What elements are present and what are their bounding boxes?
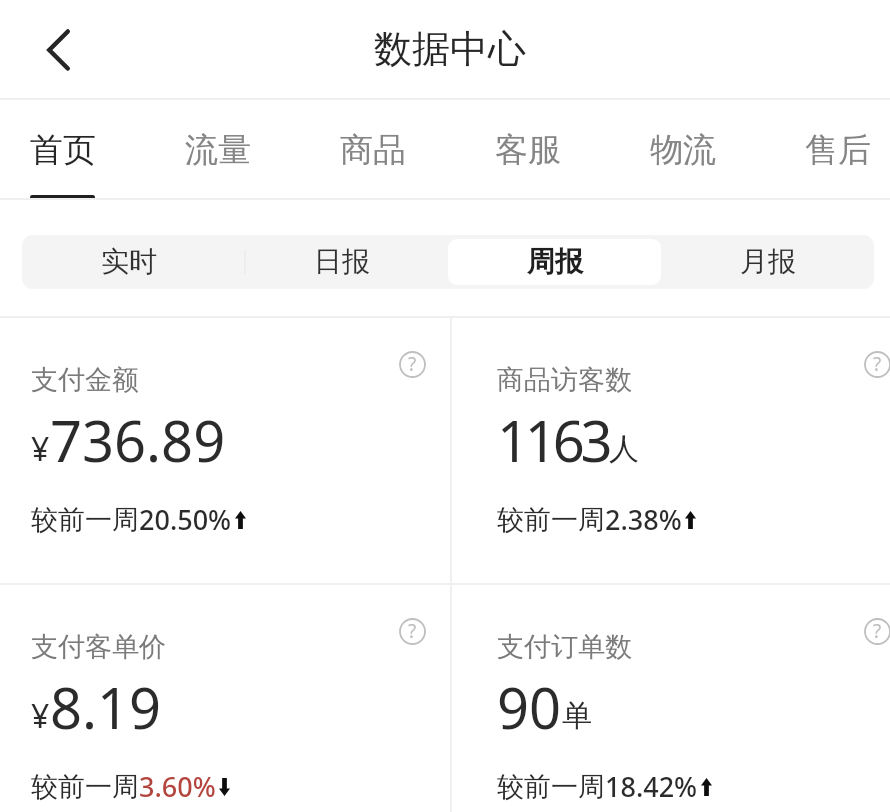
staticText: 支付金额 [31, 363, 139, 397]
staticText: 售后 [805, 129, 871, 171]
button[interactable]: 客服 [494, 100, 561, 200]
staticText: 支付客单价 [31, 630, 166, 664]
button[interactable]: Back [12, 15, 82, 85]
staticText: ¥ [31, 427, 50, 471]
staticText: 单 [562, 697, 592, 735]
staticText: ? [408, 351, 417, 377]
staticText: 商品 [340, 129, 406, 171]
button[interactable]: 支付订单数 [451, 585, 890, 812]
staticText: 月报 [740, 244, 796, 279]
staticText: 数据中心 [374, 25, 526, 73]
staticText: 20.50% [139, 501, 232, 538]
staticText: 周报 [527, 244, 583, 279]
staticText: ? [873, 351, 882, 377]
button[interactable]: 首页 [29, 100, 96, 200]
button[interactable]: Help [399, 351, 426, 378]
staticText: 支付订单数 [497, 630, 632, 664]
staticText: 物流 [650, 129, 716, 171]
staticText: 18.42% [605, 768, 698, 805]
staticText: 2.38% [605, 501, 682, 538]
staticText: 1163 [497, 402, 609, 478]
button[interactable]: 支付客单价 [0, 585, 450, 812]
staticText: 较前一周 [497, 503, 605, 537]
staticText: ? [873, 618, 882, 644]
staticText: 90 [497, 669, 562, 745]
button[interactable]: 周报 [448, 239, 661, 285]
button[interactable]: 月报 [661, 239, 874, 285]
staticText: 人 [609, 430, 639, 468]
staticText: 较前一周 [497, 770, 605, 804]
button[interactable]: 商品访客数 [451, 318, 890, 583]
button[interactable]: Help [399, 618, 426, 645]
button[interactable]: Help [864, 618, 890, 645]
staticText: 首页 [30, 129, 96, 171]
staticText: 实时 [101, 244, 157, 279]
button[interactable]: 流量 [184, 100, 251, 200]
button[interactable]: 支付金额 [0, 318, 450, 583]
staticText: 8.19 [50, 669, 162, 745]
button[interactable]: 商品 [339, 100, 406, 200]
staticText: 736.89 [50, 402, 226, 478]
button[interactable]: 实时 [22, 239, 235, 285]
button[interactable]: 售后 [804, 100, 871, 200]
staticText: ¥ [31, 694, 50, 738]
button[interactable]: Help [864, 351, 890, 378]
staticText: 较前一周 [31, 770, 139, 804]
button[interactable]: 日报 [235, 239, 448, 285]
staticText: 客服 [495, 129, 561, 171]
button[interactable]: 物流 [649, 100, 716, 200]
staticText: ? [408, 618, 417, 644]
staticText: 流量 [185, 129, 251, 171]
staticText: 3.60% [139, 768, 216, 805]
staticText: 较前一周 [31, 503, 139, 537]
staticText: 商品访客数 [497, 363, 632, 397]
staticText: 日报 [314, 244, 370, 279]
